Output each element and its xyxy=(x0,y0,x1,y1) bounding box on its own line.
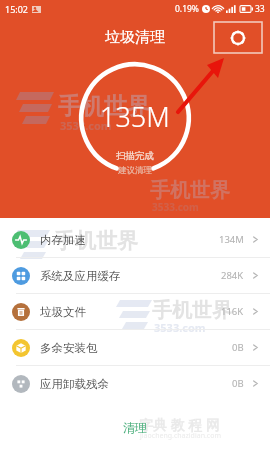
staticText: 清理 xyxy=(123,420,147,435)
staticText: 33 xyxy=(255,3,265,15)
staticText: jiaocheng.chazidian.com xyxy=(140,431,222,441)
staticText: 135M xyxy=(100,98,170,135)
staticText: 内存加速 xyxy=(40,233,86,247)
staticText: 扫描完成 xyxy=(116,150,154,162)
staticText: 字典 教 程 网 xyxy=(139,415,220,434)
button[interactable]: Settings xyxy=(214,22,262,53)
staticText: 3533.com xyxy=(154,320,206,335)
button[interactable]: 垃圾文件 xyxy=(0,294,270,329)
staticText: 116K xyxy=(221,305,244,318)
button[interactable]: 应用卸载残余 xyxy=(0,366,270,401)
button[interactable]: 内存加速 xyxy=(0,222,270,257)
staticText: 284K xyxy=(221,269,244,282)
button[interactable]: 字典 教 程 网 xyxy=(0,405,270,449)
staticText: 0B xyxy=(232,377,244,390)
button[interactable]: 多余安装包 xyxy=(0,330,270,365)
staticText: 134M xyxy=(219,233,244,246)
button[interactable]: 系统及应用缓存 xyxy=(0,258,270,293)
staticText: 0.19% xyxy=(175,3,199,15)
staticText: 手机世界 xyxy=(152,298,232,323)
staticText: 15:02 xyxy=(5,3,29,15)
staticText: 手机世界 xyxy=(54,228,138,254)
staticText: 垃圾清理 xyxy=(105,28,165,47)
staticText: 手机世界 xyxy=(150,178,230,203)
staticText: 0B xyxy=(232,341,244,354)
staticText: 系统及应用缓存 xyxy=(40,269,121,283)
staticText: 3533.com xyxy=(60,118,112,133)
staticText: 3533.com xyxy=(152,200,199,214)
staticText: 手机世界 xyxy=(58,92,150,121)
staticText: 应用卸载残余 xyxy=(40,377,109,391)
staticText: 多余安装包 xyxy=(40,341,98,355)
staticText: 垃圾文件 xyxy=(40,305,86,319)
staticText: 建议清理 xyxy=(118,165,152,176)
